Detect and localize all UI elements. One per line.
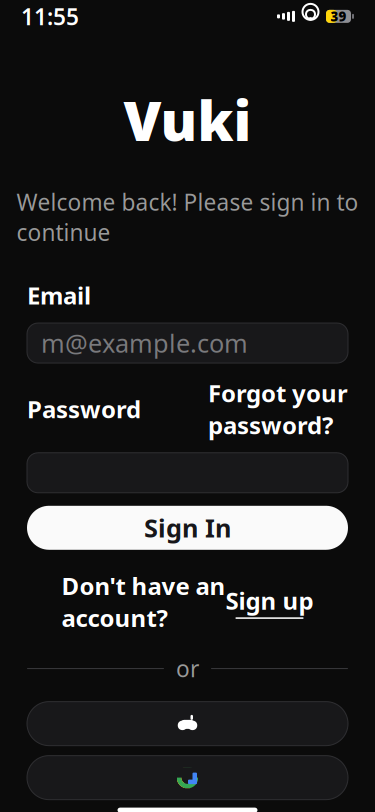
staticText: Password [27,393,141,425]
staticText: 11:55 [21,1,79,31]
button[interactable]: Forgot your password? [208,377,348,441]
staticText: or [176,653,199,684]
staticText: Vuki [123,83,251,156]
staticText: 39 [330,7,346,25]
button[interactable]: Sign In [27,506,348,550]
button[interactable]: Sign in with Apple [27,702,348,746]
staticText: m@example.com [41,326,248,360]
staticText: Forgot your password? [208,377,348,441]
button[interactable]: Sign up [225,584,313,619]
staticText: Sign up [225,584,313,616]
staticText: Welcome back! Please sign in to continue [16,187,358,247]
staticText: Don't have an account? [61,570,225,633]
staticText: Email [27,279,91,311]
staticText: Sign In [144,511,231,545]
button[interactable]: Sign in with Google [27,756,348,800]
